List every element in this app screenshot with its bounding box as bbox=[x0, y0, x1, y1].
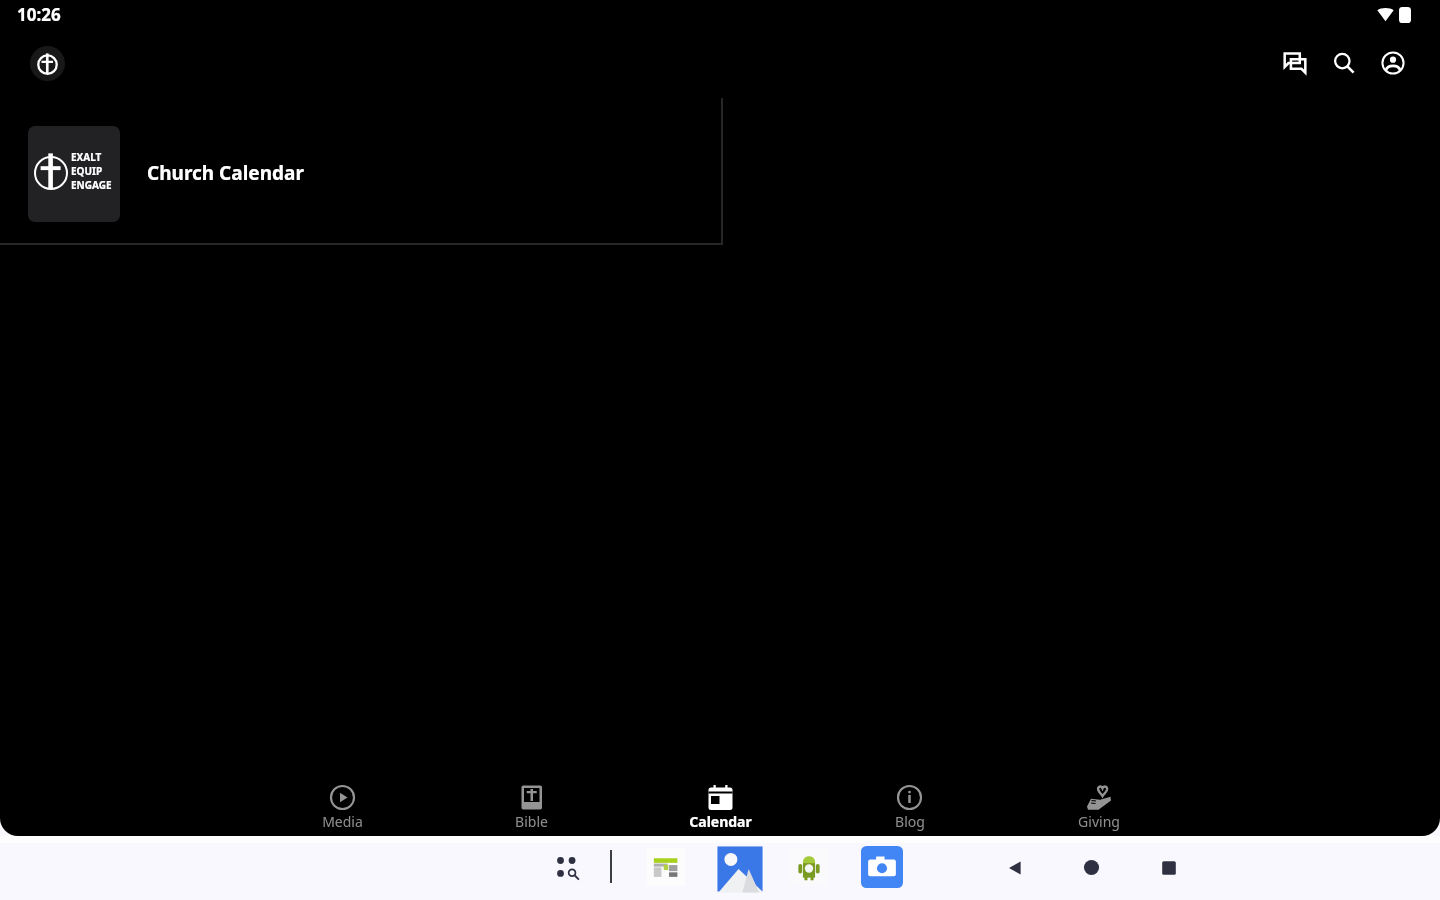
staticText: EQUIP bbox=[71, 164, 103, 178]
button[interactable]: Back bbox=[1005, 858, 1025, 878]
staticText: Giving bbox=[1078, 812, 1120, 831]
staticText: Blog bbox=[895, 812, 925, 831]
button[interactable]: Photos bbox=[716, 845, 764, 893]
staticText: Calendar bbox=[689, 812, 752, 831]
staticText: Church Calendar bbox=[147, 160, 304, 186]
staticText: EXALT bbox=[71, 150, 102, 164]
button[interactable]: Account bbox=[1373, 43, 1413, 83]
button[interactable]: Home bbox=[1081, 857, 1102, 878]
button[interactable]: EXALT bbox=[0, 98, 723, 245]
button[interactable]: Search bbox=[1324, 43, 1364, 83]
button[interactable]: Android bbox=[790, 848, 828, 886]
button[interactable]: Apps and search bbox=[551, 851, 585, 885]
staticText: ENGAGE bbox=[71, 178, 112, 192]
button[interactable]: Bible bbox=[437, 766, 626, 836]
staticText: 10:26 bbox=[17, 3, 61, 26]
button[interactable]: Blog bbox=[815, 766, 1004, 836]
button[interactable]: Home bbox=[30, 46, 65, 81]
button[interactable]: Giving bbox=[1004, 766, 1193, 836]
button[interactable]: Camera bbox=[861, 846, 903, 888]
button[interactable]: News bbox=[647, 848, 685, 886]
button[interactable]: Calendar bbox=[626, 766, 815, 836]
button[interactable]: Messages bbox=[1275, 43, 1315, 83]
button[interactable]: Media bbox=[248, 766, 437, 836]
button[interactable]: Recents bbox=[1159, 858, 1179, 878]
staticText: Media bbox=[322, 812, 363, 831]
staticText: Bible bbox=[515, 812, 548, 831]
